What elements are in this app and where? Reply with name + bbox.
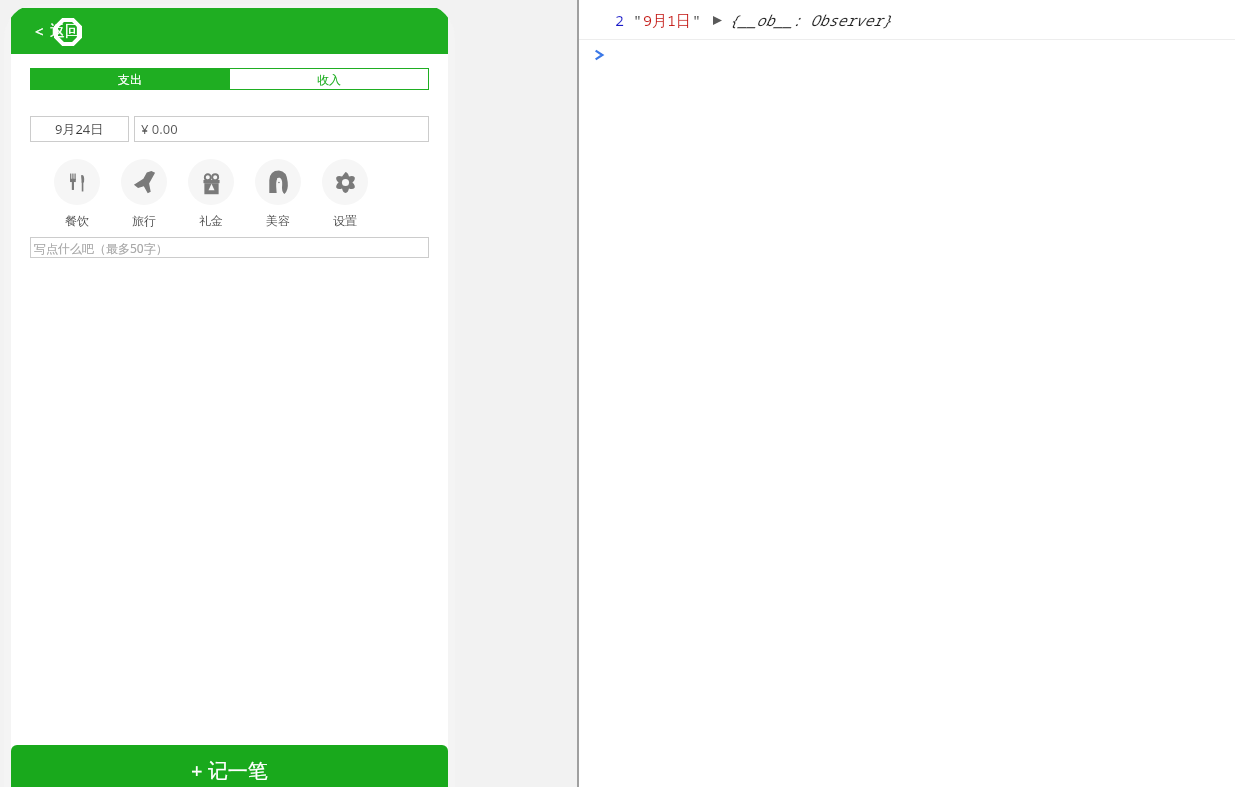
staticText: 设置	[333, 213, 357, 228]
staticText: ¥ 0.00	[141, 120, 178, 138]
button[interactable]: 9月24日	[30, 116, 129, 142]
button[interactable]: + 记一笔	[11, 745, 448, 787]
staticText: 返回	[50, 22, 80, 41]
button[interactable]: 设置	[317, 159, 373, 228]
button[interactable]: <	[31, 17, 84, 45]
staticText: {__ob__: Observer}	[729, 10, 892, 30]
staticText: 2	[615, 10, 625, 30]
button[interactable]: ¥ 0.00	[134, 116, 429, 142]
staticText: 旅行	[132, 213, 156, 228]
staticText: "	[633, 10, 643, 30]
button[interactable]: 支出	[30, 68, 229, 90]
staticText: 收入	[317, 72, 341, 87]
button[interactable]: 写点什么吧（最多50字）	[30, 237, 429, 258]
button[interactable]: Expand object	[710, 13, 724, 27]
button[interactable]: 旅行	[116, 159, 172, 228]
staticText: 美容	[266, 213, 290, 228]
staticText: 支出	[118, 72, 142, 87]
staticText: 9月24日	[55, 120, 104, 138]
staticText: + 记一笔	[191, 757, 268, 784]
staticText: 写点什么吧（最多50字）	[34, 240, 168, 256]
button[interactable]: 礼金	[183, 159, 239, 228]
staticText: "	[692, 10, 702, 30]
staticText: 礼金	[199, 213, 223, 228]
staticText: <	[35, 21, 44, 41]
button[interactable]: 美容	[250, 159, 306, 228]
button[interactable]: 餐饮	[49, 159, 105, 228]
staticText: 餐饮	[65, 213, 89, 228]
button[interactable]: 收入	[229, 68, 429, 90]
staticText: 9月1日	[643, 10, 692, 30]
button[interactable]	[579, 40, 1235, 70]
